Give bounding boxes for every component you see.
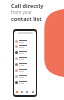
button[interactable] [14,79,36,85]
button[interactable] [14,43,36,49]
button[interactable] [14,61,36,67]
staticText: Call directly [11,2,44,9]
button[interactable]: Favorites [24,88,30,95]
button[interactable] [14,38,36,44]
button[interactable] [14,67,36,73]
button[interactable] [14,49,36,55]
button[interactable]: Recents [19,88,24,95]
button[interactable]: Settings [30,88,36,95]
button[interactable]: Contacts [14,88,19,95]
button[interactable] [14,55,36,61]
staticText: from your [11,9,33,15]
button[interactable] [14,73,36,79]
staticText: contact list [11,15,42,22]
